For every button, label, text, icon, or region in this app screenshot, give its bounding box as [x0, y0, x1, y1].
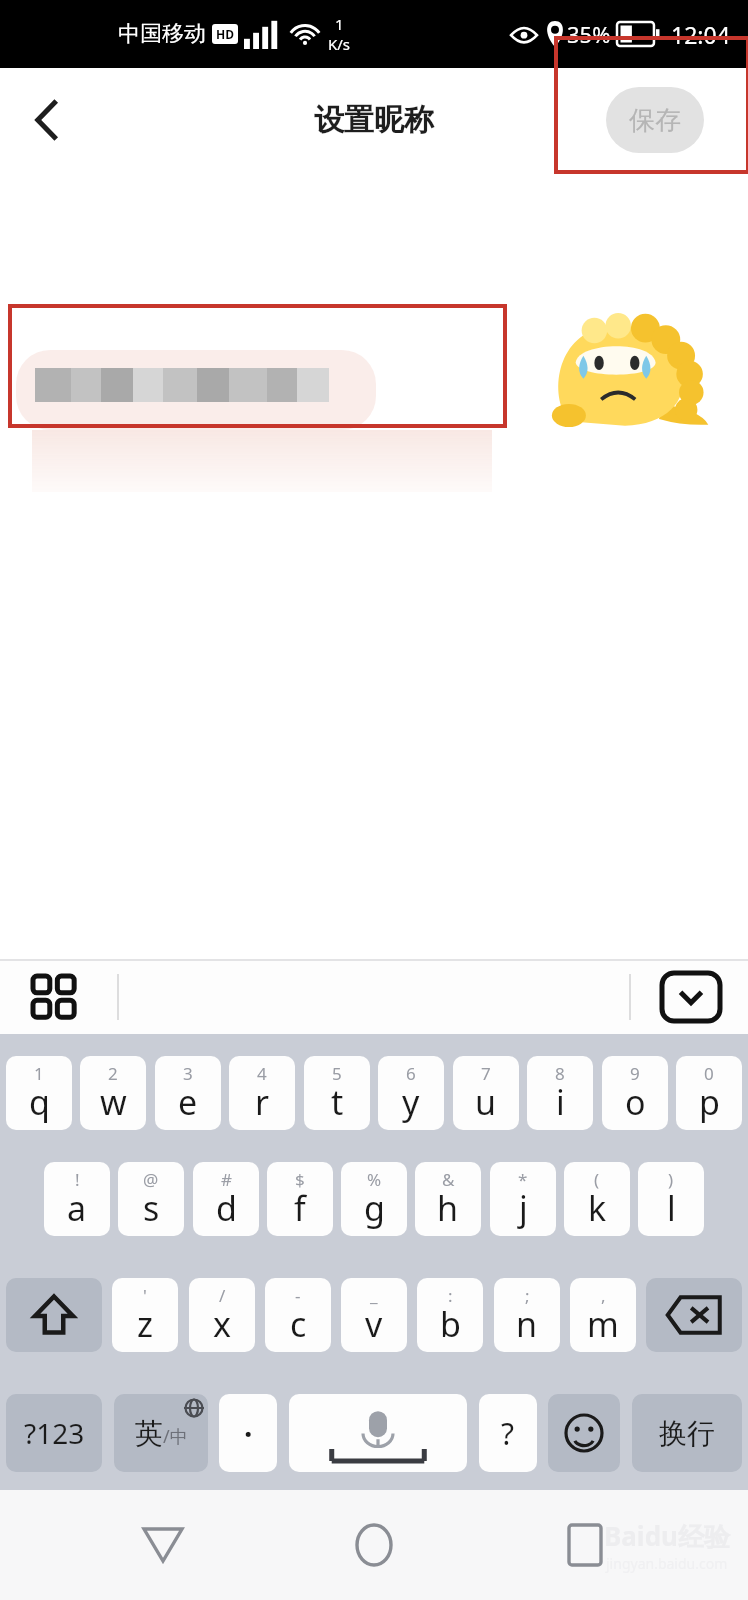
- staticText: y: [402, 1079, 420, 1125]
- staticText: u: [475, 1079, 497, 1125]
- staticText: 2: [108, 1062, 118, 1085]
- staticText: /: [219, 1284, 226, 1307]
- staticText: z: [137, 1301, 153, 1347]
- staticText: i: [556, 1079, 565, 1125]
- button[interactable]: ·: [219, 1394, 277, 1472]
- staticText: ,: [601, 1284, 606, 1307]
- staticText: Baidu经验: [604, 1518, 730, 1554]
- staticText: 1: [34, 1062, 44, 1085]
- button[interactable]: $: [267, 1162, 333, 1236]
- staticText: (: [594, 1168, 600, 1191]
- button[interactable]: 4: [229, 1056, 295, 1130]
- button[interactable]: 换行: [632, 1394, 742, 1472]
- staticText: m: [587, 1301, 619, 1347]
- staticText: :: [448, 1284, 453, 1307]
- staticText: 8: [555, 1062, 565, 1085]
- staticText: $: [295, 1168, 305, 1191]
- button[interactable]: Home: [326, 1502, 422, 1588]
- staticText: /中: [163, 1424, 188, 1449]
- staticText: 3: [183, 1062, 193, 1085]
- button[interactable]: 0: [676, 1056, 742, 1130]
- button[interactable]: @: [118, 1162, 184, 1236]
- button[interactable]: ': [112, 1278, 178, 1352]
- staticText: 4: [257, 1062, 267, 1085]
- staticText: 英: [135, 1416, 163, 1451]
- button[interactable]: -: [265, 1278, 331, 1352]
- staticText: ;: [525, 1284, 530, 1307]
- button[interactable]: Back: [14, 87, 80, 153]
- button[interactable]: Space: [289, 1394, 467, 1472]
- button[interactable]: Recent apps: [537, 1502, 633, 1588]
- button[interactable]: 保存: [606, 87, 704, 153]
- button[interactable]: ?123: [6, 1394, 102, 1472]
- staticText: w: [100, 1079, 127, 1125]
- staticText: *: [518, 1168, 528, 1191]
- staticText: j: [519, 1185, 528, 1231]
- staticText: HD: [216, 26, 234, 42]
- staticText: 1: [335, 14, 344, 34]
- button[interactable]: 8: [527, 1056, 593, 1130]
- button[interactable]: ;: [494, 1278, 560, 1352]
- staticText: 12:04: [671, 19, 730, 50]
- button[interactable]: Keyboard panel: [22, 965, 86, 1029]
- button[interactable]: 7: [453, 1056, 519, 1130]
- staticText: _: [370, 1284, 378, 1307]
- button[interactable]: /: [189, 1278, 255, 1352]
- staticText: @: [143, 1168, 159, 1191]
- staticText: p: [699, 1079, 720, 1125]
- staticText: 0: [704, 1062, 714, 1085]
- staticText: 35%: [567, 19, 611, 49]
- staticText: t: [331, 1079, 344, 1125]
- button[interactable]: Emoji: [548, 1394, 620, 1472]
- button[interactable]: 5: [304, 1056, 370, 1130]
- button[interactable]: 2: [80, 1056, 146, 1130]
- staticText: c: [290, 1301, 307, 1347]
- staticText: K/s: [328, 34, 351, 54]
- staticText: q: [29, 1079, 50, 1125]
- button[interactable]: Back: [115, 1502, 211, 1588]
- staticText: 中国移动: [118, 20, 206, 48]
- staticText: ): [668, 1168, 674, 1191]
- staticText: f: [294, 1185, 306, 1231]
- button[interactable]: *: [490, 1162, 556, 1236]
- staticText: r: [255, 1079, 270, 1125]
- button[interactable]: 1: [6, 1056, 72, 1130]
- staticText: v: [365, 1301, 383, 1347]
- staticText: g: [364, 1185, 385, 1231]
- button[interactable]: &: [415, 1162, 481, 1236]
- staticText: 6: [406, 1062, 416, 1085]
- staticText: s: [143, 1185, 160, 1231]
- button[interactable]: 英: [114, 1394, 208, 1472]
- button[interactable]: ): [638, 1162, 704, 1236]
- staticText: ?: [501, 1413, 515, 1454]
- staticText: n: [516, 1301, 538, 1347]
- staticText: l: [667, 1185, 676, 1231]
- staticText: 5: [332, 1062, 342, 1085]
- button[interactable]: #: [193, 1162, 259, 1236]
- button[interactable]: :: [417, 1278, 483, 1352]
- staticText: k: [588, 1185, 607, 1231]
- button[interactable]: _: [341, 1278, 407, 1352]
- staticText: 设置昵称: [314, 101, 434, 139]
- button[interactable]: %: [341, 1162, 407, 1236]
- staticText: ·: [244, 1413, 253, 1454]
- button[interactable]: !: [44, 1162, 110, 1236]
- staticText: !: [75, 1168, 80, 1191]
- button[interactable]: Backspace: [646, 1278, 742, 1352]
- button[interactable]: Shift: [6, 1278, 102, 1352]
- button[interactable]: ?: [479, 1394, 537, 1472]
- staticText: %: [367, 1168, 382, 1191]
- button[interactable]: 6: [378, 1056, 444, 1130]
- button[interactable]: 3: [155, 1056, 221, 1130]
- button[interactable]: Hide keyboard: [660, 971, 722, 1023]
- staticText: #: [221, 1168, 232, 1191]
- staticText: h: [437, 1185, 459, 1231]
- staticText: a: [67, 1185, 87, 1231]
- staticText: d: [216, 1185, 237, 1231]
- staticText: ': [143, 1284, 147, 1307]
- button[interactable]: 9: [602, 1056, 668, 1130]
- staticText: &: [442, 1168, 455, 1191]
- button[interactable]: (: [564, 1162, 630, 1236]
- button[interactable]: ,: [570, 1278, 636, 1352]
